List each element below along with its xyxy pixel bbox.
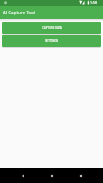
button[interactable]: Recents: [66, 168, 95, 183]
button[interactable]: Back: [8, 168, 37, 183]
button[interactable]: SETTINGS: [2, 35, 101, 47]
staticText: AI Capture Tool: [3, 10, 36, 15]
staticText: 1:58: [90, 0, 97, 5]
staticText: SETTINGS: [45, 39, 58, 43]
button[interactable]: Home: [37, 168, 66, 183]
staticText: CAPTURE DATA: [42, 26, 62, 30]
button[interactable]: CAPTURE DATA: [2, 22, 101, 34]
